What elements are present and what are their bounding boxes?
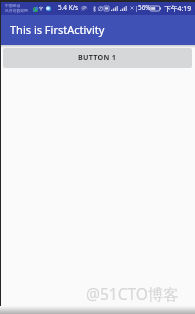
staticText: @51CTO博客	[86, 283, 179, 304]
button[interactable]: This is FirstActivity	[0, 15, 195, 45]
staticText: BUTTON 1	[78, 52, 117, 62]
staticText: This is FirstActivity	[10, 22, 105, 37]
button[interactable]: BUTTON 1	[3, 48, 192, 68]
staticText: 5.4 K/s	[58, 3, 79, 12]
staticText: 中国移动	[5, 3, 21, 8]
staticText: 已开启数据网	[5, 8, 28, 13]
staticText: 56%	[138, 3, 151, 12]
staticText: 下午4:19	[164, 4, 192, 13]
